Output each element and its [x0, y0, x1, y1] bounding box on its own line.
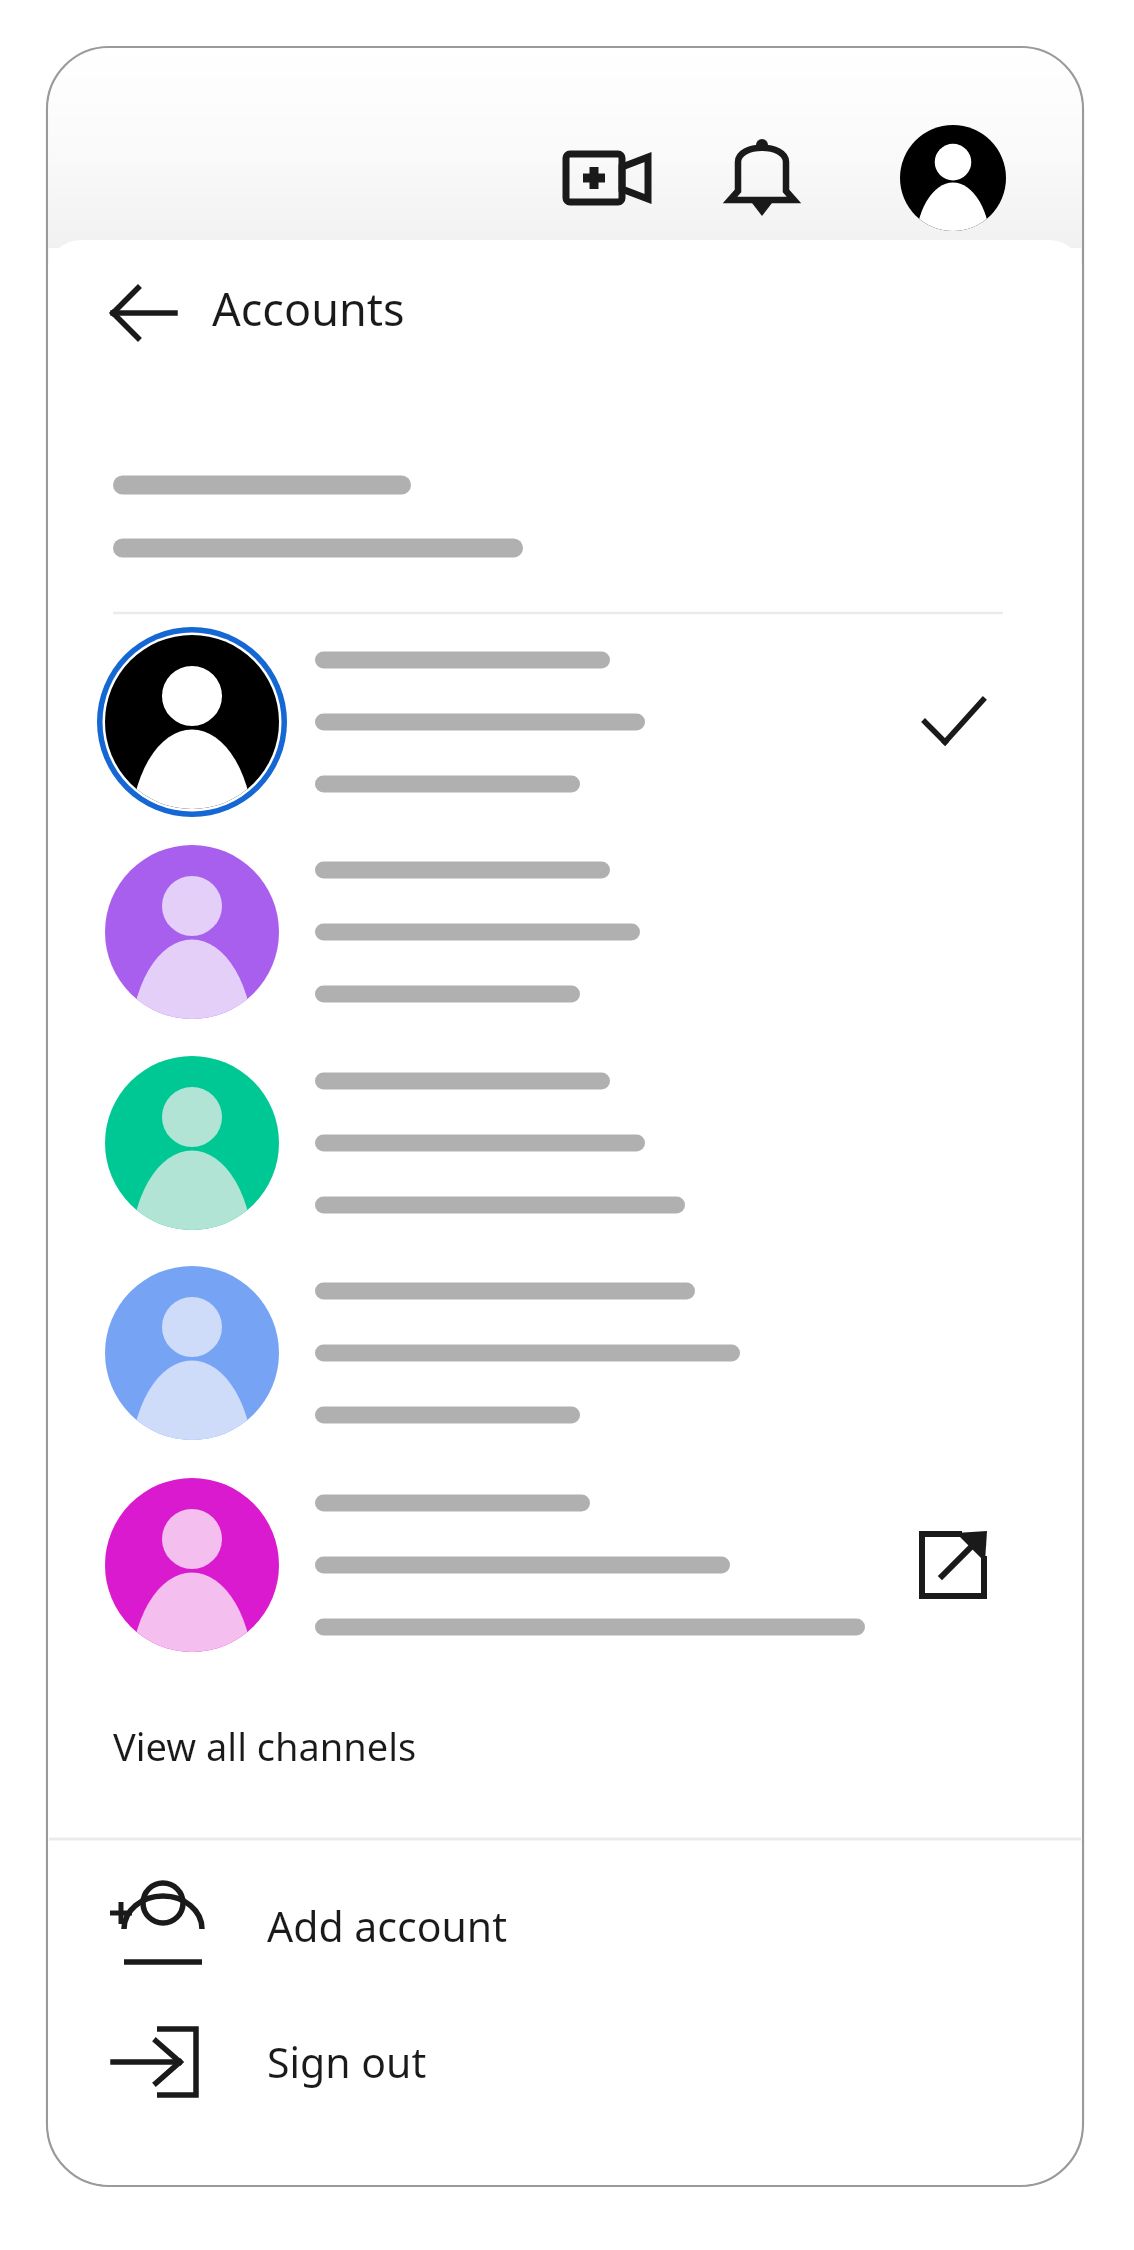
button[interactable]: Your account: [895, 120, 1011, 236]
button[interactable]: View all channels: [47, 1690, 1083, 1802]
staticText: Accounts: [212, 278, 405, 339]
button[interactable]: Notifications: [704, 120, 820, 236]
staticText: Add account: [267, 1898, 507, 1954]
button[interactable]: Create video: [534, 120, 658, 236]
staticText: Sign out: [267, 2034, 427, 2090]
button[interactable]: Sign out: [47, 1998, 1083, 2126]
button[interactable]: Add account: [47, 1862, 1083, 1990]
button[interactable]: Accounts: [212, 278, 405, 339]
button[interactable]: Account 2: [47, 836, 1083, 1028]
button[interactable]: Account 3: [47, 1047, 1083, 1239]
button[interactable]: Back: [80, 266, 184, 362]
button[interactable]: Account 4: [47, 1257, 1083, 1449]
button[interactable]: Account 5: [47, 1469, 1083, 1661]
staticText: View all channels: [113, 1720, 417, 1772]
button[interactable]: Account 1: [47, 626, 1083, 818]
